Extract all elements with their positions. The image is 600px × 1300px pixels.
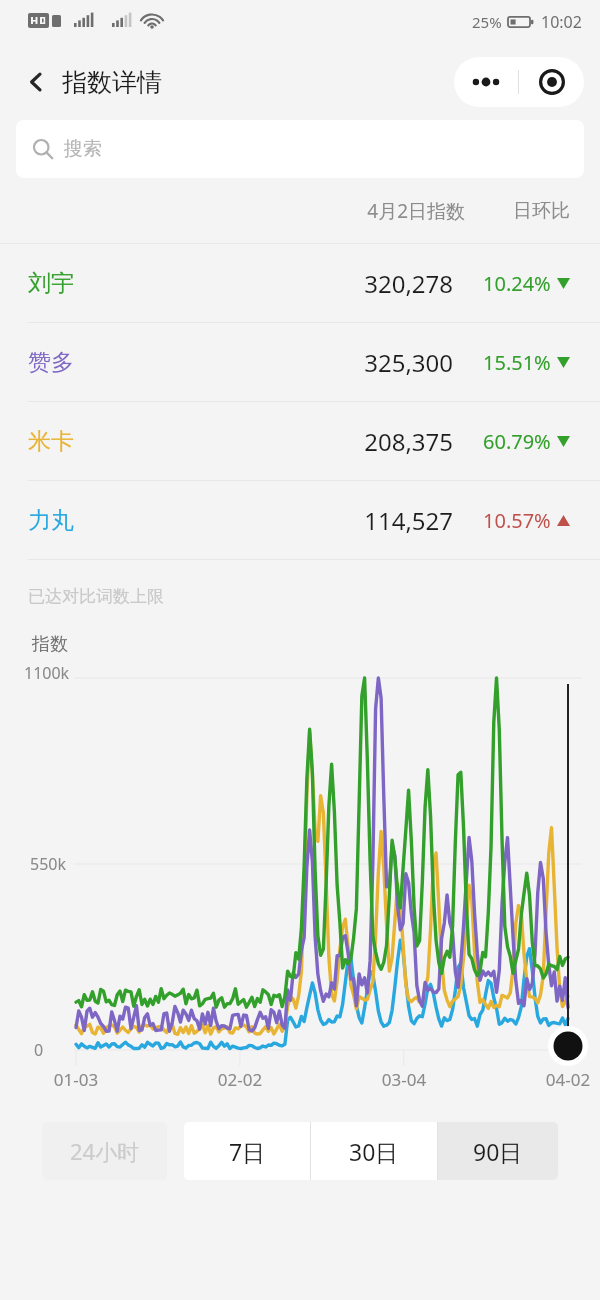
staticText: 指数 — [32, 633, 68, 656]
staticText: 320,278 — [323, 267, 453, 300]
button[interactable]: 30日 — [311, 1122, 437, 1180]
staticText: 25% — [472, 12, 502, 32]
staticText: 日环比 — [513, 199, 570, 223]
staticText: 30日 — [349, 1136, 399, 1167]
button[interactable]: Target — [519, 57, 584, 107]
staticText: 赞多 — [28, 348, 74, 377]
staticText: 指数详情 — [62, 67, 162, 98]
staticText: 7日 — [229, 1136, 266, 1167]
staticText: 搜索 — [64, 137, 102, 161]
staticText: 90日 — [473, 1136, 523, 1167]
staticText: 550k — [30, 853, 67, 875]
staticText: 1100k — [24, 662, 70, 684]
button[interactable]: 24小时 — [42, 1122, 167, 1180]
staticText: 力丸 — [28, 506, 74, 535]
staticText: 0 — [34, 1039, 44, 1061]
button[interactable]: Back — [14, 60, 58, 104]
button[interactable]: 赞多 — [0, 323, 600, 402]
staticText: 114,527 — [323, 504, 453, 537]
button[interactable]: More options — [454, 57, 518, 107]
staticText: 刘宇 — [28, 269, 74, 298]
staticText: 02-02 — [210, 1068, 270, 1091]
staticText: 15.51% — [483, 349, 551, 376]
staticText: 已达对比词数上限 — [28, 586, 164, 607]
staticText: 10.57% — [483, 507, 551, 534]
staticText: 4月2日指数 — [335, 198, 465, 224]
staticText: 03-04 — [374, 1068, 434, 1091]
staticText: 208,375 — [323, 425, 453, 458]
staticText: 60.79% — [483, 428, 551, 455]
button[interactable]: 7日 — [184, 1122, 310, 1180]
button[interactable]: 90日 — [438, 1122, 558, 1180]
staticText: 10:02 — [541, 11, 582, 33]
staticText: 325,300 — [323, 346, 453, 379]
staticText: 01-03 — [46, 1068, 106, 1091]
button[interactable]: 搜索 — [16, 120, 584, 178]
staticText: 米卡 — [28, 427, 74, 456]
staticText: 04-02 — [538, 1068, 598, 1091]
staticText: 10.24% — [483, 270, 551, 297]
button[interactable]: 力丸 — [0, 481, 600, 560]
staticText: 24小时 — [70, 1136, 140, 1166]
button[interactable]: 刘宇 — [0, 244, 600, 323]
button[interactable]: 米卡 — [0, 402, 600, 481]
